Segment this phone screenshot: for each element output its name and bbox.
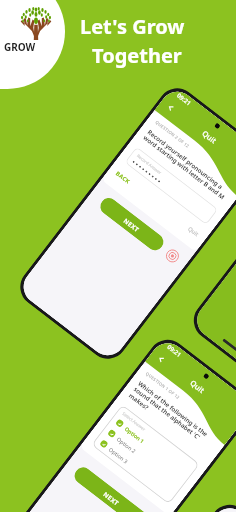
staticText: Select Answer: [121, 411, 147, 433]
staticText: Option 1: [123, 425, 146, 445]
button[interactable]: NEXT: [71, 464, 153, 512]
staticText: Record yourself pronouncing a word start…: [141, 127, 233, 203]
staticText: QUESTION 2 OF 12: [154, 120, 191, 150]
staticText: Record Answer: [135, 153, 163, 176]
button[interactable]: Quit: [200, 128, 219, 146]
staticText: GROW STUDIO: [4, 40, 68, 54]
button[interactable]: Quit: [188, 378, 207, 395]
staticText: 09:21: [166, 343, 183, 359]
button[interactable]: BACK: [114, 169, 132, 186]
staticText: Option 3: [108, 446, 129, 465]
staticText: 09:21: [175, 92, 193, 108]
button[interactable]: Option 1: [115, 418, 187, 476]
button[interactable]: Option 2: [107, 429, 179, 486]
button[interactable]: Back: [153, 350, 169, 367]
button[interactable]: Back: [162, 99, 179, 115]
staticText: NEXT: [102, 490, 121, 507]
button[interactable]: NEXT: [97, 195, 167, 254]
staticText: Let's Grow: [80, 13, 185, 40]
button[interactable]: Option 3: [99, 439, 171, 497]
staticText: Together: [92, 42, 182, 69]
staticText: NEXT: [122, 216, 142, 233]
staticText: Which of the following is the sound that…: [127, 379, 219, 458]
button[interactable]: Quit: [186, 225, 201, 239]
staticText: Option 2: [116, 435, 137, 454]
staticText: QUESTION 1 OF 12: [144, 371, 181, 401]
button[interactable]: Record: [162, 245, 183, 266]
